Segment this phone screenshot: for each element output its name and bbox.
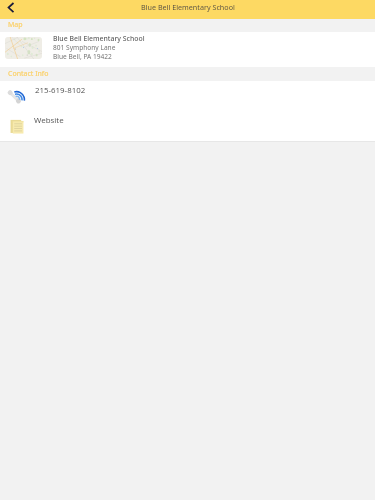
staticText: Blue Bell Elementary School [53,34,145,43]
staticText: Website [34,115,64,126]
button[interactable]: Back [0,0,20,19]
button[interactable]: 215-619-8102 [0,81,375,111]
button[interactable]: Blue Bell Elementary School [0,32,375,67]
staticText: 215-619-8102 [35,85,86,96]
staticText: Contact Info [8,69,49,79]
staticText: 801 Symphony Lane [53,43,116,52]
staticText: Blue Bell, PA 19422 [53,52,112,61]
button[interactable]: Website [0,111,375,141]
staticText: Blue Bell Elementary School [141,2,235,12]
staticText: Map [8,20,23,30]
